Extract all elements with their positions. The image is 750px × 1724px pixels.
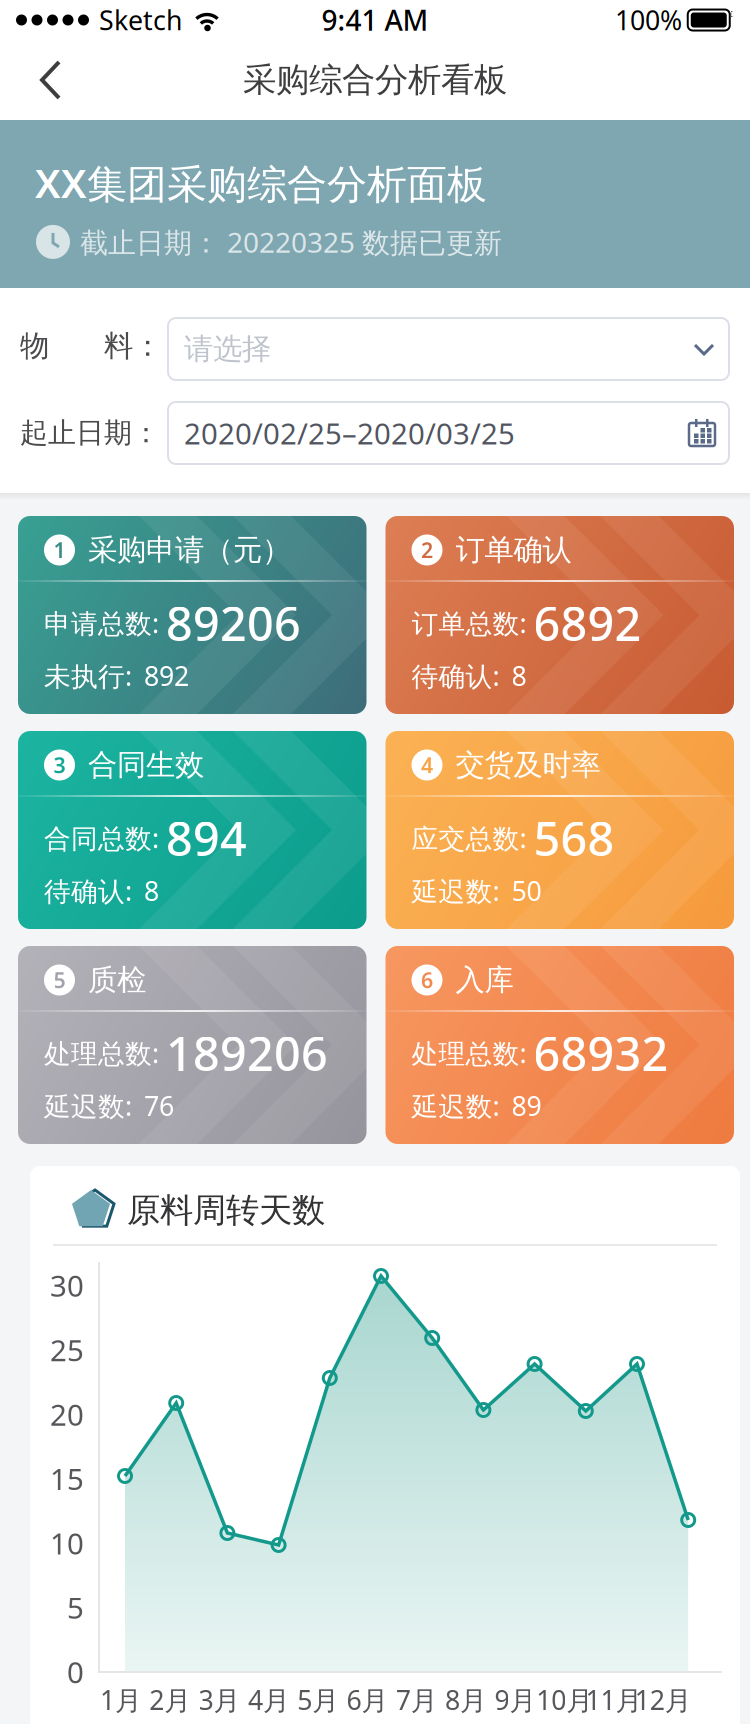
staticText: 568 [533,807,614,869]
staticText: 100% [615,2,682,38]
staticText: 3月 [199,1682,241,1717]
staticText: 894 [166,807,247,869]
staticText: 6月 [346,1682,388,1717]
button[interactable]: 5 [18,946,366,1144]
staticText: 采购申请（元） [88,532,291,568]
staticText: 25 [50,1330,84,1369]
staticText: 申请总数: [44,605,159,641]
staticText: 未执行: [44,658,132,693]
staticText: 合同生效 [88,747,204,783]
staticText: 30 [50,1266,84,1305]
staticText: 9月 [494,1682,536,1717]
button[interactable]: 物料选择 [168,318,729,380]
staticText: 15 [50,1459,84,1498]
staticText: 处理总数: [411,1035,526,1071]
staticText: 起止日期： [20,416,160,450]
button[interactable]: 1 [18,516,366,714]
staticText: 6892 [533,592,641,654]
staticText: 延迟数: [411,873,499,908]
staticText: 1 [53,536,65,564]
staticText: 交货及时率 [455,747,600,783]
staticText: 2月 [149,1682,191,1717]
staticText: 76 [144,1088,174,1123]
staticText: XX集团采购综合分析面板 [35,156,487,209]
staticText: 2 [421,536,433,564]
staticText: 892 [144,658,189,693]
staticText: 订单总数: [411,605,526,641]
staticText: 延迟数: [411,1088,499,1123]
staticText: 12月 [635,1682,692,1717]
button[interactable]: 3 [18,731,366,929]
staticText: 质检 [88,962,146,998]
staticText: 89206 [166,592,301,654]
staticText: 8 [511,658,526,693]
staticText: 11月 [585,1682,642,1717]
staticText: 原料周转天数 [127,1190,325,1231]
staticText: 20 [50,1395,84,1434]
staticText: 请选择 [184,331,271,367]
staticText: 1月 [100,1682,142,1717]
button[interactable]: 6 [385,946,734,1144]
staticText: 9:41 AM [321,1,428,39]
staticText: 应交总数: [411,820,526,856]
staticText: 6 [421,966,433,994]
staticText: Sketch [99,2,182,38]
staticText: 189206 [166,1022,328,1084]
staticText: 68932 [533,1022,668,1084]
staticText: 处理总数: [44,1035,159,1071]
staticText: 10 [50,1524,84,1563]
button[interactable]: 返回 [0,57,64,103]
staticText: 89 [511,1088,541,1123]
staticText: 入库 [455,962,513,998]
staticText: 采购综合分析看板 [243,59,507,100]
staticText: 订单确认 [455,532,571,568]
staticText: 物 [20,328,49,364]
staticText: 4 [421,751,433,779]
staticText: 10月 [536,1682,593,1717]
staticText: 5月 [297,1682,339,1717]
button[interactable]: 起止日期选择 [168,402,729,464]
button[interactable]: 4 [385,731,734,929]
staticText: 待确认: [44,873,132,908]
staticText: 8月 [445,1682,487,1717]
staticText: 截止日期： 20220325 数据已更新 [80,223,502,260]
staticText: 5 [53,966,65,994]
staticText: 合同总数: [44,820,159,856]
staticText: 50 [511,873,541,908]
staticText: 3 [53,751,65,779]
staticText: 料： [104,328,162,364]
staticText: 5 [67,1588,84,1627]
staticText: 7月 [396,1682,438,1717]
staticText: 4月 [248,1682,290,1717]
staticText: 8 [144,873,159,908]
staticText: 延迟数: [44,1088,132,1123]
staticText: 2020/02/25–2020/03/25 [184,413,515,452]
button[interactable]: 2 [385,516,734,714]
staticText: 待确认: [411,658,499,693]
staticText: 0 [67,1652,84,1691]
